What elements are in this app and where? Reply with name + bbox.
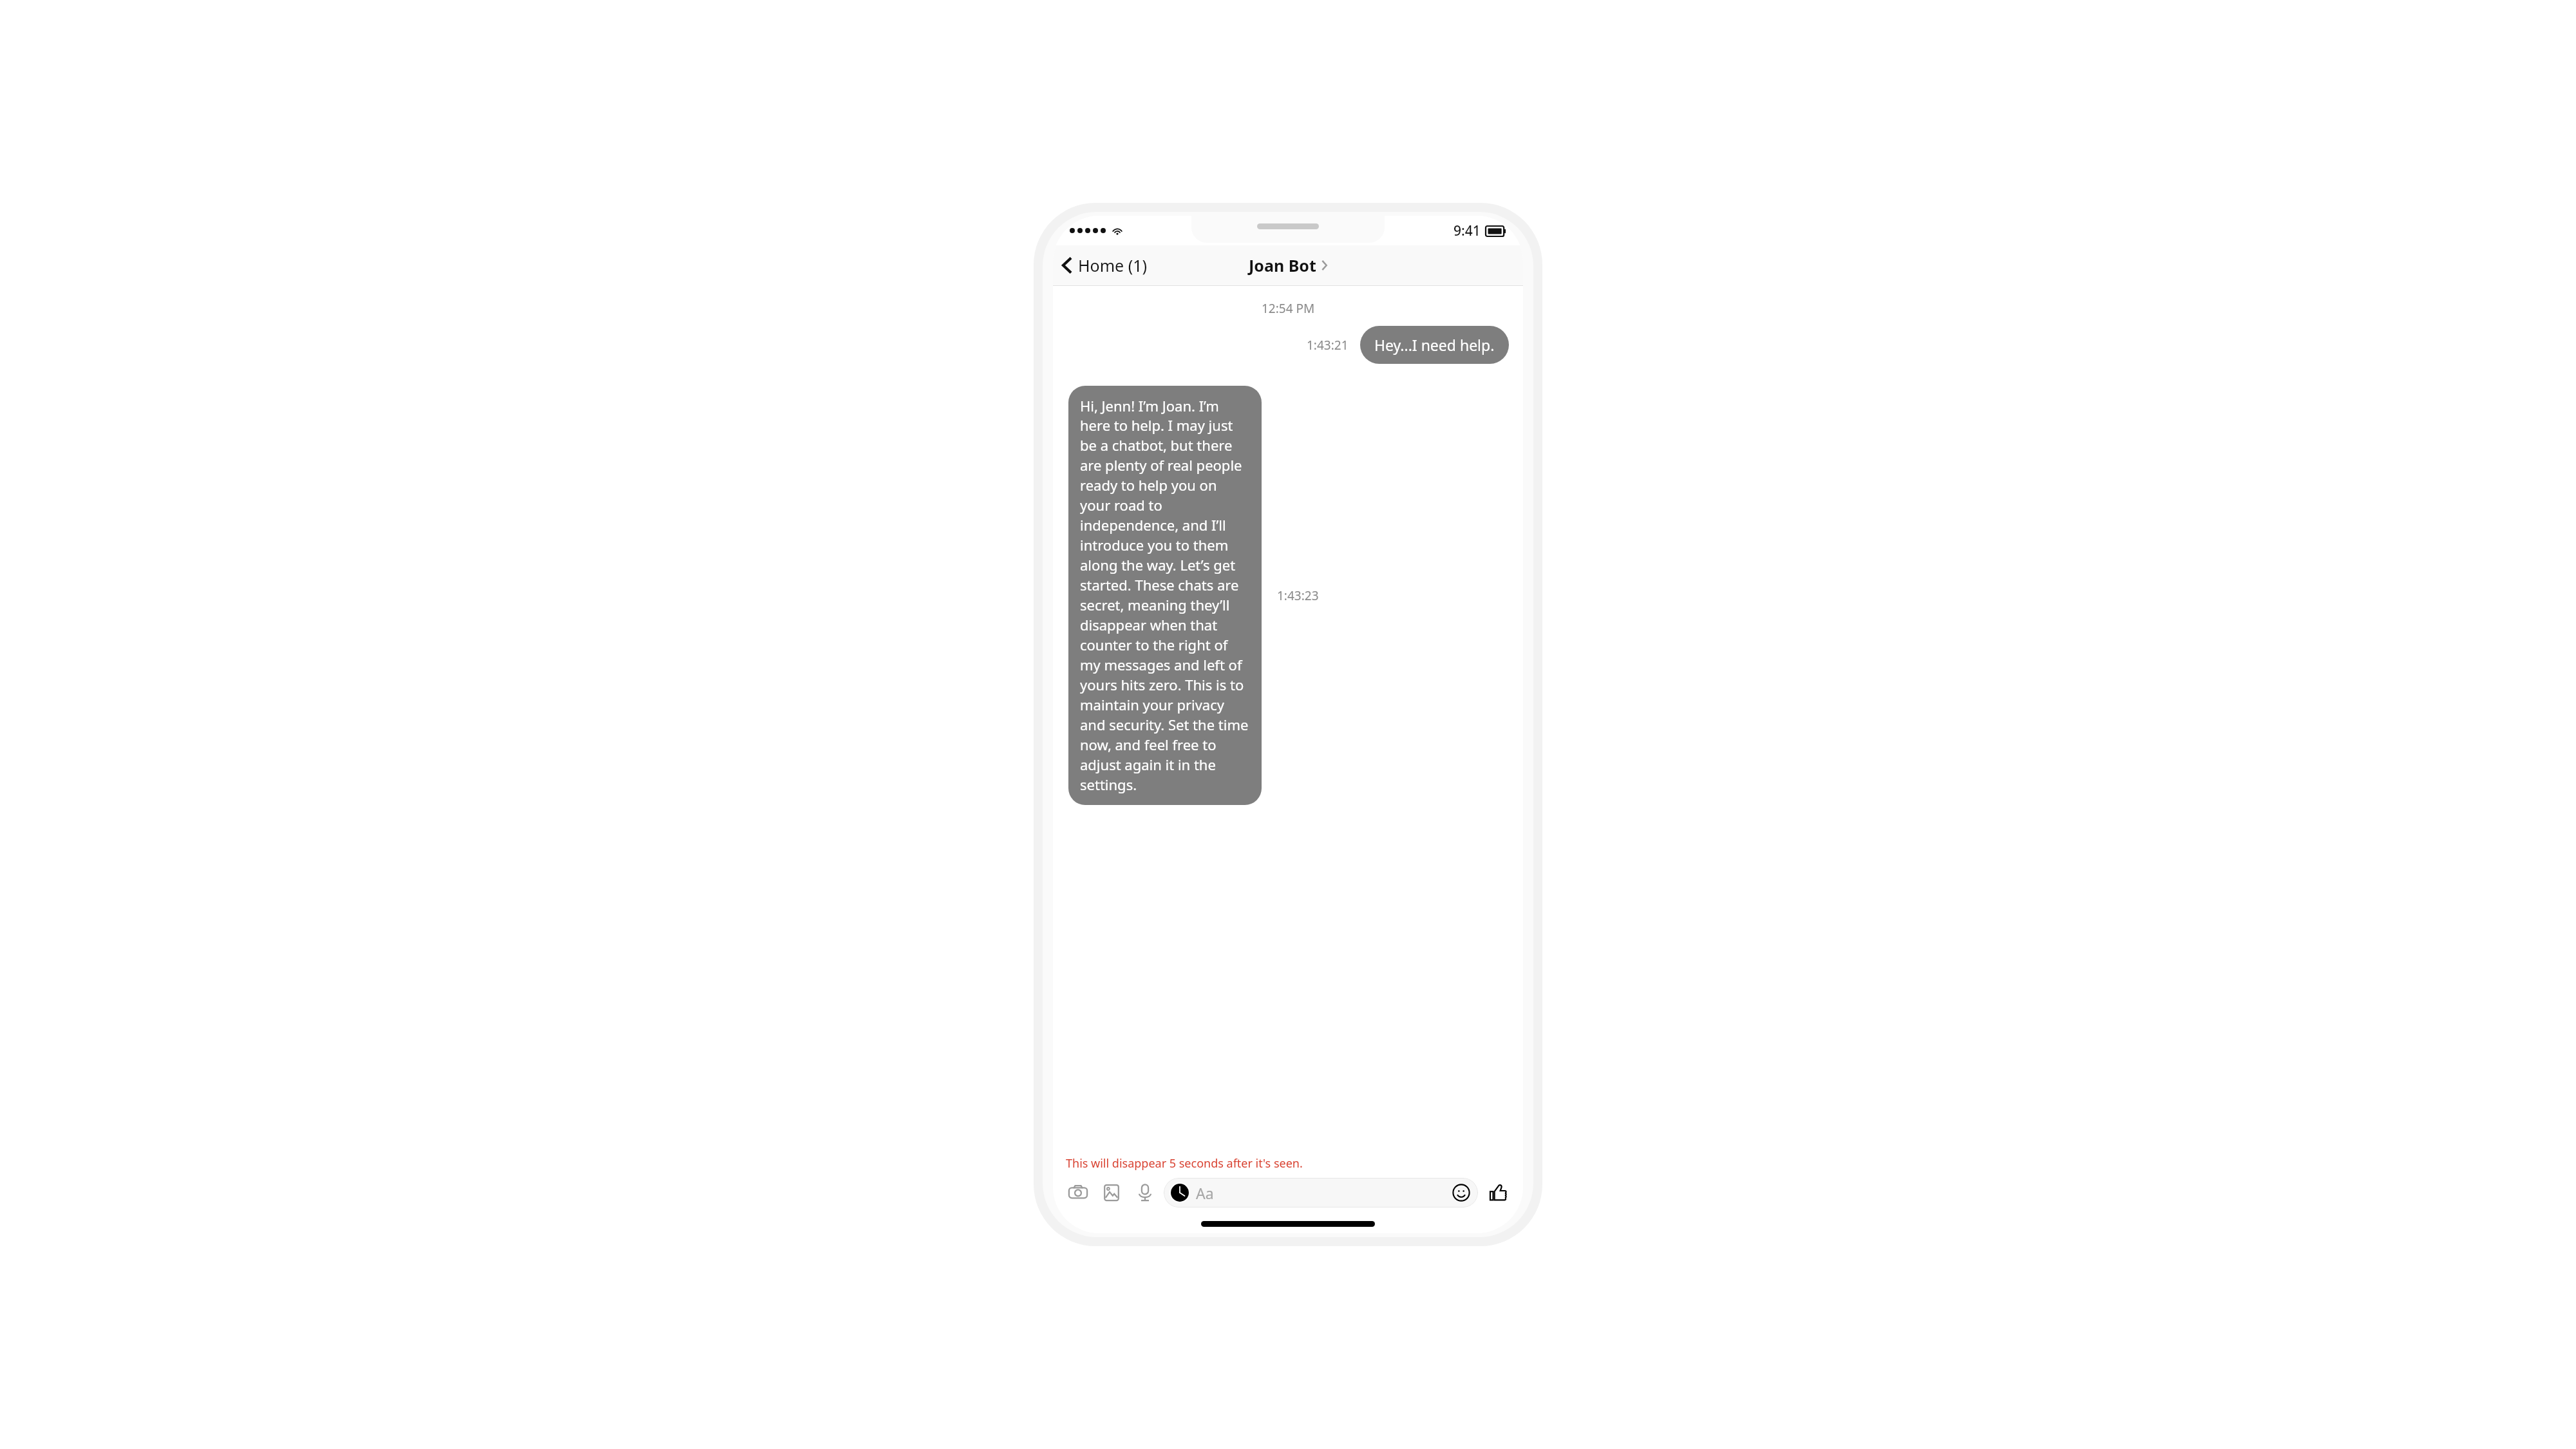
staticText: 12:54 PM [1262,300,1315,317]
staticText: 9:41 [1454,222,1481,240]
button[interactable]: Hey...I need help. [1360,326,1509,364]
staticText: 1:43:21 [1307,337,1349,354]
button[interactable]: Voice message [1132,1179,1159,1206]
staticText: 1:43:23 [1277,587,1319,604]
button[interactable]: Emoji [1451,1182,1472,1203]
button[interactable]: Hi, Jenn! I’m Joan. I’m here to help. I … [1068,386,1262,805]
staticText: Hey...I need help. [1374,335,1495,355]
button[interactable]: Camera [1065,1179,1092,1206]
button[interactable]: Joan Bot [1244,251,1332,280]
staticText: Hi, Jenn! I’m Joan. I’m here to help. I … [1080,396,1250,795]
button[interactable]: Send like [1484,1179,1511,1206]
staticText: Aa [1196,1183,1214,1203]
other: Disappearing timer [1170,1183,1189,1202]
button[interactable]: Home (1) [1053,251,1153,280]
staticText: Home (1) [1078,254,1147,276]
button[interactable]: Disappearing timer [1164,1178,1478,1207]
button[interactable]: Photos [1098,1179,1125,1206]
staticText: Joan Bot [1249,254,1316,276]
staticText: This will disappear 5 seconds after it's… [1066,1155,1303,1171]
